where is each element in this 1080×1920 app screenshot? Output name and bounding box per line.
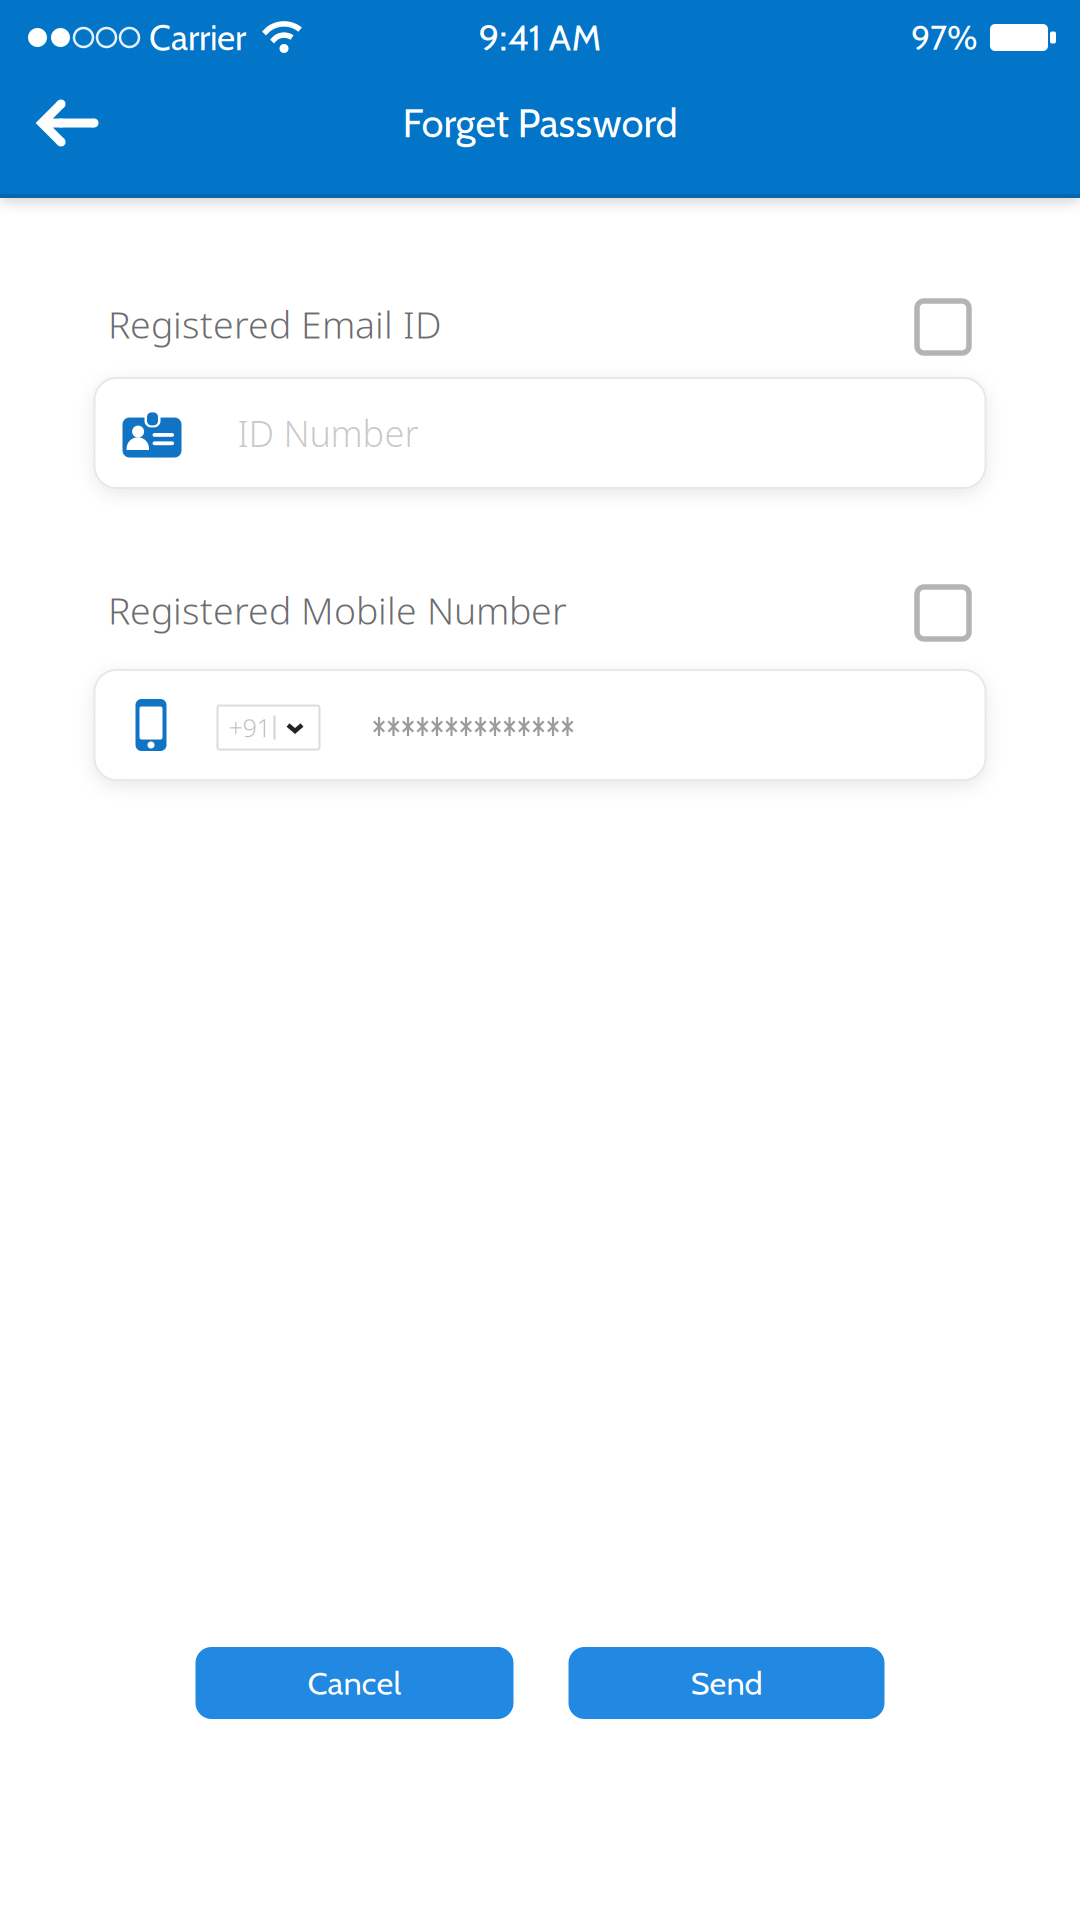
staticText: Registered Email ID [108, 299, 442, 349]
button[interactable]: ID Number [94, 378, 985, 488]
staticText: Carrier [149, 16, 246, 59]
button[interactable]: Send [568, 1647, 884, 1719]
button[interactable]: +91 [94, 670, 985, 780]
button[interactable] [917, 301, 969, 353]
staticText: Cancel [307, 1663, 401, 1703]
staticText: ID Number [237, 409, 418, 457]
staticText: Send [690, 1663, 762, 1703]
staticText: 9:41 AM [478, 15, 601, 60]
staticText: Forget Password [402, 99, 677, 147]
button[interactable]: Cancel [195, 1647, 513, 1719]
staticText: +91 [228, 711, 270, 744]
button[interactable] [917, 587, 969, 639]
button[interactable]: +91 [217, 705, 319, 749]
button[interactable] [0, 89, 98, 157]
staticText: Registered Mobile Number [108, 585, 567, 635]
staticText: 97% [911, 17, 978, 58]
